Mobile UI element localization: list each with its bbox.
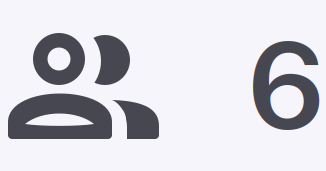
staticText: 6 <box>247 15 324 156</box>
